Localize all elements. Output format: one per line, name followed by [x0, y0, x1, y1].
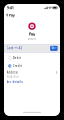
- button[interactable]: Pay: [5, 11, 16, 19]
- staticText: Address: [6, 71, 17, 74]
- button[interactable]: Credit: [4, 62, 60, 70]
- staticText: See details: [6, 80, 22, 84]
- staticText: Pay: [29, 31, 35, 36]
- staticText: Card ••• 42: [6, 46, 22, 50]
- button[interactable]: See details: [6, 80, 22, 84]
- button[interactable]: Card ••• 42: [4, 45, 60, 52]
- staticText: Pay: [9, 12, 15, 18]
- staticText: Debit: [13, 56, 21, 60]
- staticText: Edit: [51, 46, 56, 50]
- staticText: Credit: [13, 64, 22, 68]
- staticText: 9:41: [7, 5, 14, 10]
- button[interactable]: Debit: [4, 54, 60, 62]
- button[interactable]: Address: [4, 70, 60, 75]
- staticText: secure: [27, 37, 36, 41]
- staticText: Total due: [6, 75, 19, 78]
